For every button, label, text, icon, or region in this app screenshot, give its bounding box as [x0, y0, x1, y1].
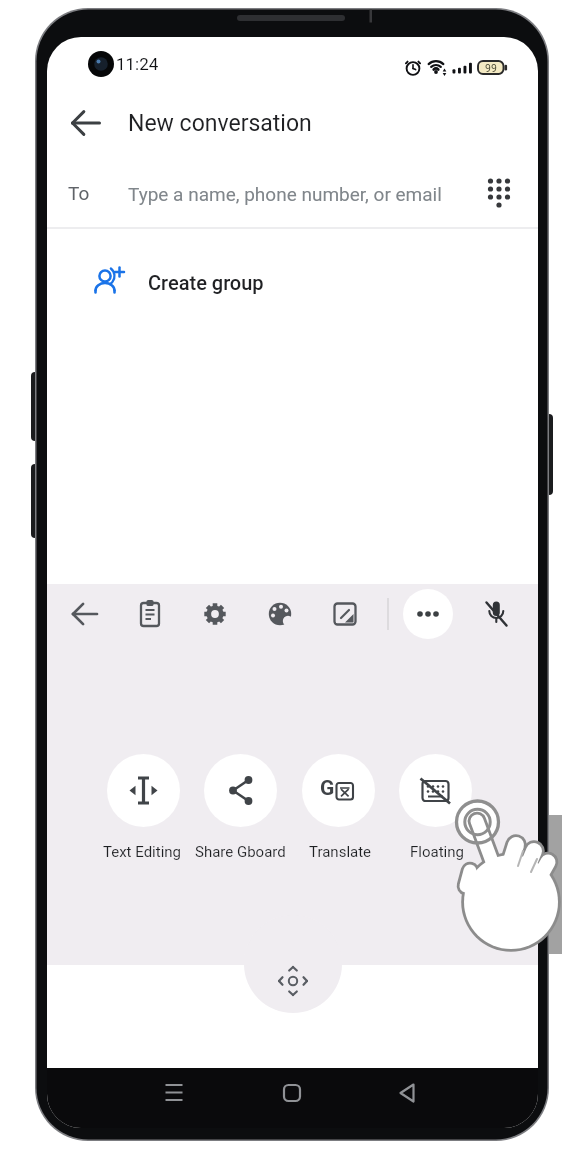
- staticText: Share Gboard: [195, 843, 286, 861]
- staticText: Create group: [148, 271, 264, 294]
- button[interactable]: [403, 589, 453, 639]
- staticText: 99: [485, 62, 497, 74]
- staticText: Translate: [309, 843, 372, 861]
- staticText: 11:24: [116, 54, 159, 74]
- staticText: Floating: [410, 843, 464, 861]
- button[interactable]: G: [302, 754, 375, 827]
- button[interactable]: [386, 1071, 430, 1115]
- staticText: G: [320, 776, 335, 801]
- button[interactable]: [322, 591, 368, 637]
- staticText: Type a name, phone number, or email: [128, 183, 442, 205]
- button[interactable]: [204, 754, 277, 827]
- button[interactable]: Create group: [47, 249, 538, 315]
- staticText: To: [68, 182, 90, 204]
- staticText: Text Editing: [103, 843, 182, 861]
- button[interactable]: [473, 591, 519, 637]
- button[interactable]: [127, 591, 173, 637]
- button[interactable]: To: [47, 158, 538, 228]
- button[interactable]: [273, 961, 313, 1001]
- button[interactable]: [107, 754, 180, 827]
- staticText: New conversation: [128, 110, 312, 137]
- button[interactable]: [64, 101, 108, 145]
- button[interactable]: [62, 591, 108, 637]
- button[interactable]: [152, 1071, 196, 1115]
- button[interactable]: [192, 591, 238, 637]
- button[interactable]: [399, 754, 472, 827]
- button[interactable]: [270, 1071, 314, 1115]
- button[interactable]: [257, 591, 303, 637]
